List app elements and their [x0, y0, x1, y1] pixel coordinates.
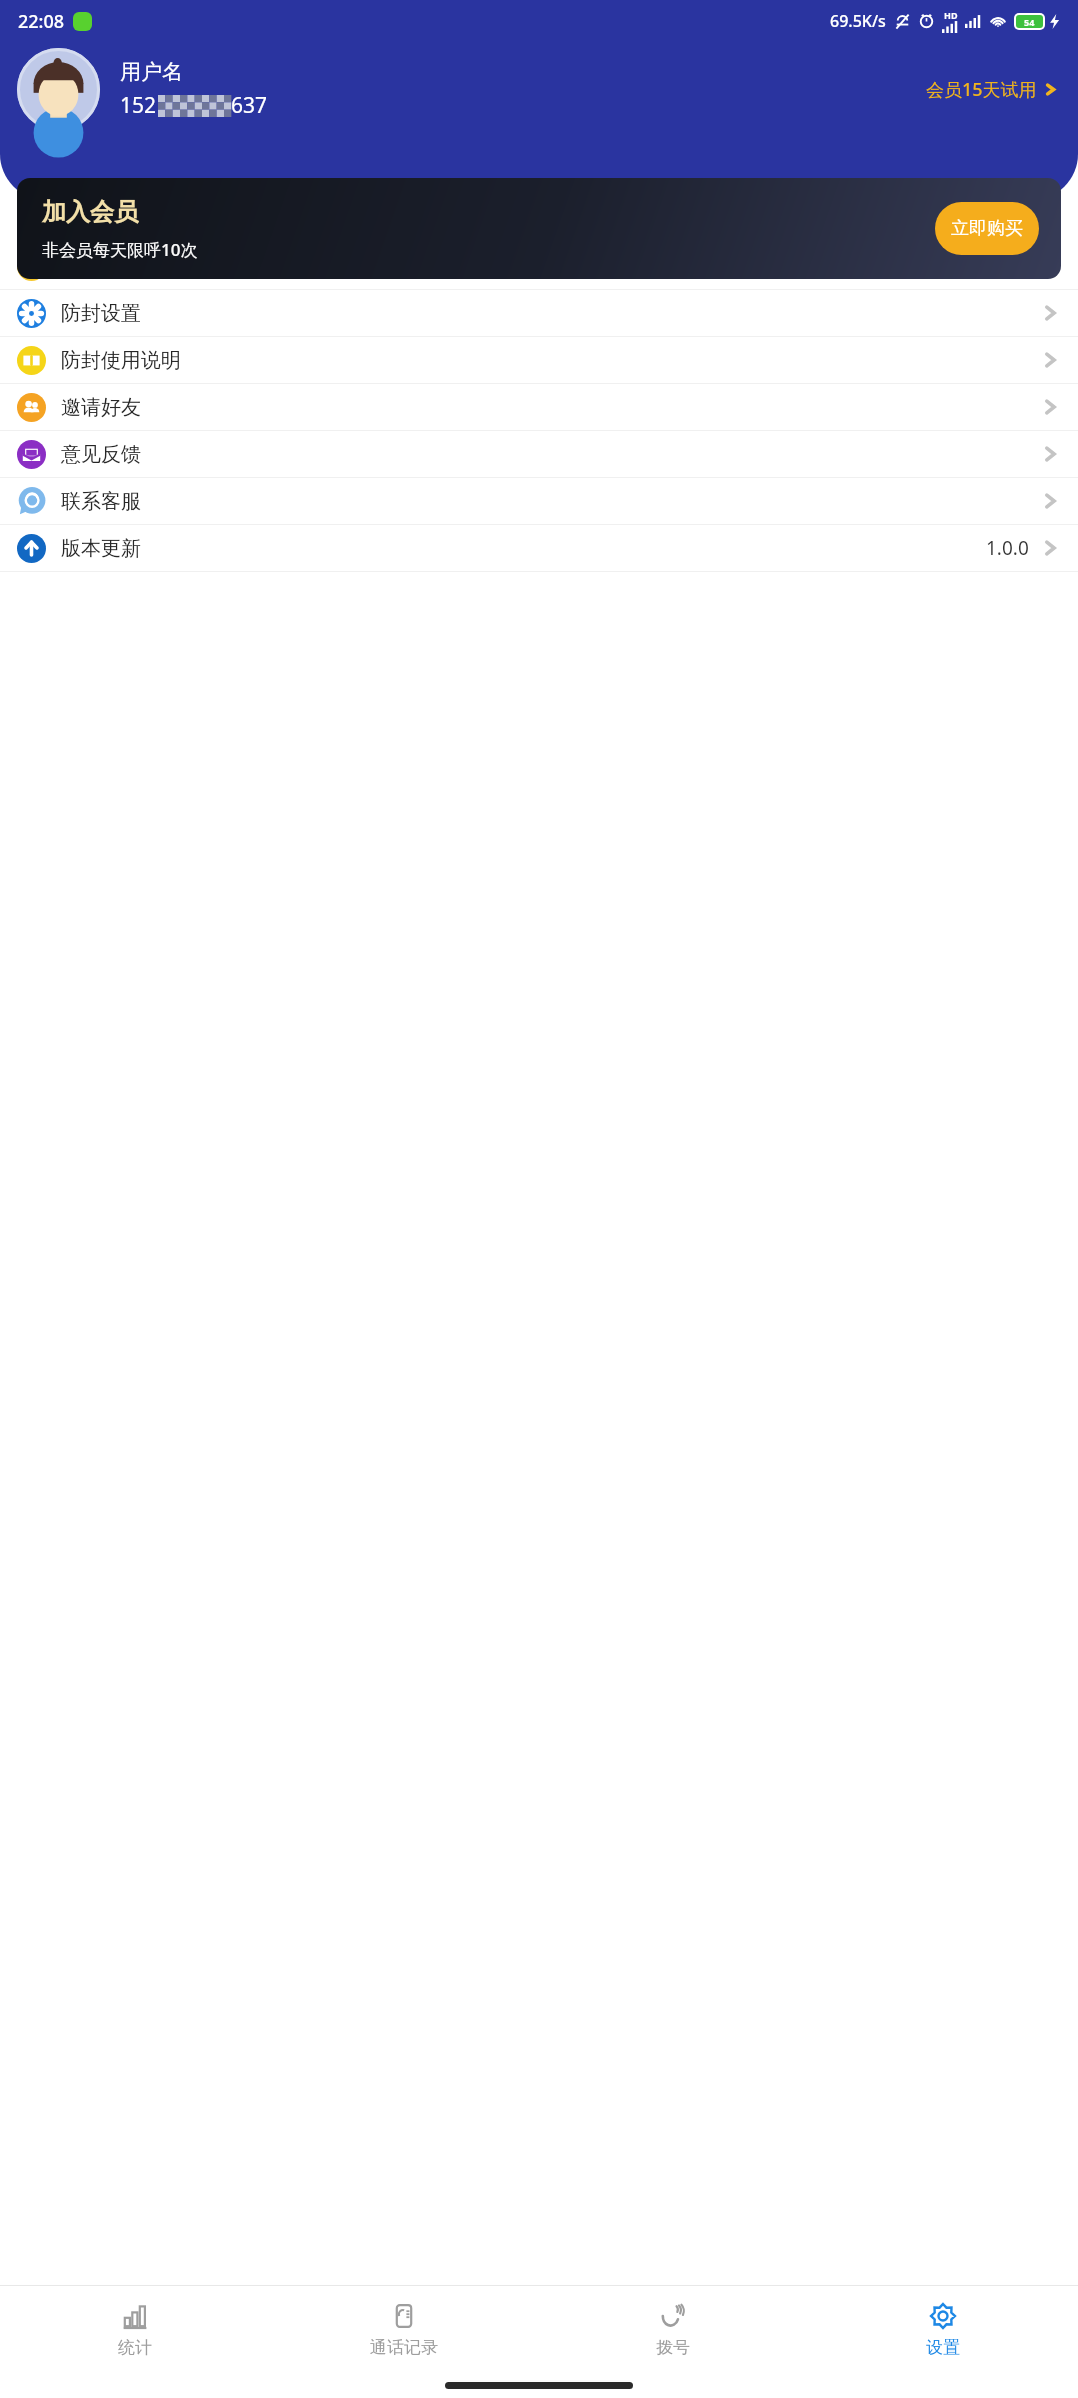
staticText: 防封设置 [61, 301, 141, 326]
staticText: 用户名 [120, 59, 183, 85]
staticText: 拨号 [656, 2337, 690, 2358]
button[interactable]: 通话记录 [269, 2286, 538, 2372]
button[interactable]: 立即购买 [935, 202, 1039, 255]
staticText: 开通会员 [61, 254, 141, 279]
button[interactable]: 设置 [808, 2286, 1078, 2372]
staticText: 22:08 [18, 9, 65, 34]
button[interactable]: 版本更新 [0, 525, 1078, 572]
staticText: 设置 [926, 2337, 960, 2358]
staticText: 加入会员 [42, 197, 138, 227]
staticText: 邀请好友 [61, 395, 141, 420]
staticText: 非会员每天限呼10次 [42, 238, 198, 261]
button[interactable]: 邀请好友 [0, 384, 1078, 431]
staticText: 152 [120, 91, 157, 120]
staticText: 会员15天试用 [926, 77, 1037, 102]
button[interactable]: 统计 [0, 2286, 269, 2372]
staticText: 54 [1024, 16, 1035, 28]
staticText: 防封使用说明 [61, 348, 181, 373]
staticText: 联系客服 [61, 489, 141, 514]
staticText: 69.5K/s [830, 10, 886, 32]
staticText: 通话记录 [370, 2337, 438, 2358]
staticText: 1.0.0 [986, 535, 1029, 561]
button[interactable]: 意见反馈 [0, 431, 1078, 478]
button[interactable]: 联系客服 [0, 478, 1078, 525]
button[interactable]: 开通会员 [0, 243, 1078, 290]
staticText: 637 [231, 91, 268, 120]
staticText: 版本更新 [61, 536, 141, 561]
button[interactable]: 防封设置 [0, 290, 1078, 337]
button[interactable]: 会员15天试用 [922, 73, 1061, 106]
button[interactable]: 防封使用说明 [0, 337, 1078, 384]
button[interactable]: 加入会员 [17, 178, 1061, 279]
staticText: HD [944, 9, 958, 21]
button[interactable]: 拨号 [538, 2286, 808, 2372]
staticText: 意见反馈 [61, 442, 141, 467]
staticText: 统计 [118, 2337, 152, 2358]
staticText: 立即购买 [951, 217, 1023, 240]
